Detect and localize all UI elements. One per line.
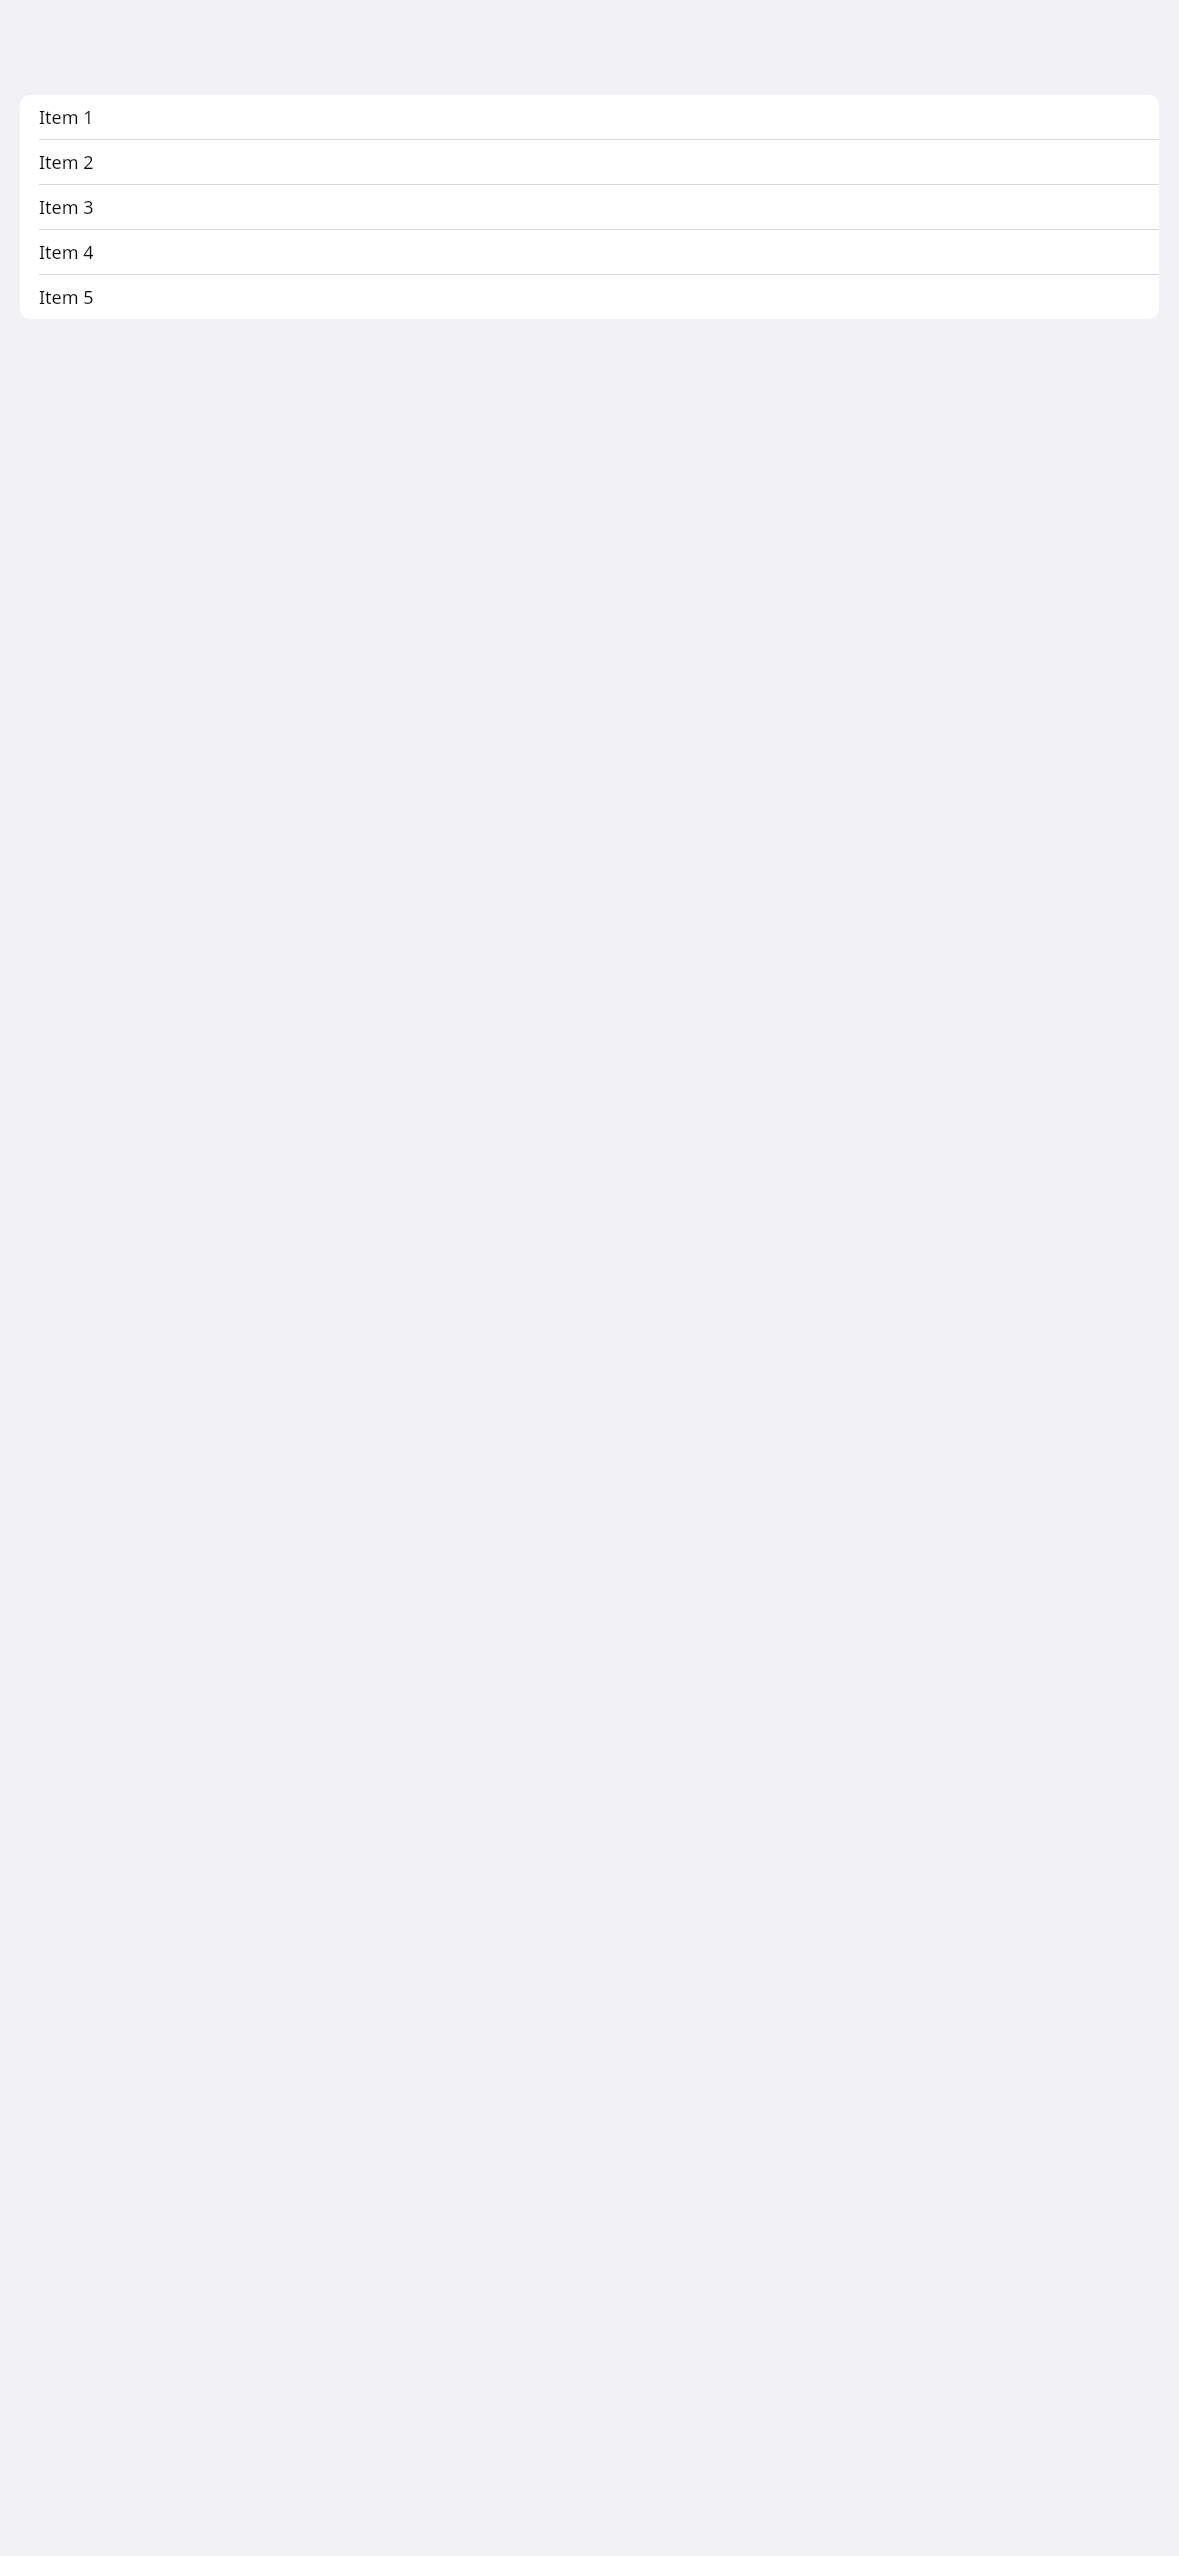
- button[interactable]: Item 5: [20, 275, 1159, 319]
- staticText: Item 5: [39, 285, 94, 310]
- staticText: Item 4: [39, 240, 94, 265]
- staticText: Item 2: [39, 150, 94, 175]
- button[interactable]: Item 3: [20, 185, 1159, 229]
- staticText: Item 3: [39, 195, 94, 220]
- staticText: Item 1: [39, 105, 94, 130]
- button[interactable]: Item 4: [20, 230, 1159, 274]
- button[interactable]: Item 2: [20, 140, 1159, 184]
- button[interactable]: Item 1: [20, 95, 1159, 139]
